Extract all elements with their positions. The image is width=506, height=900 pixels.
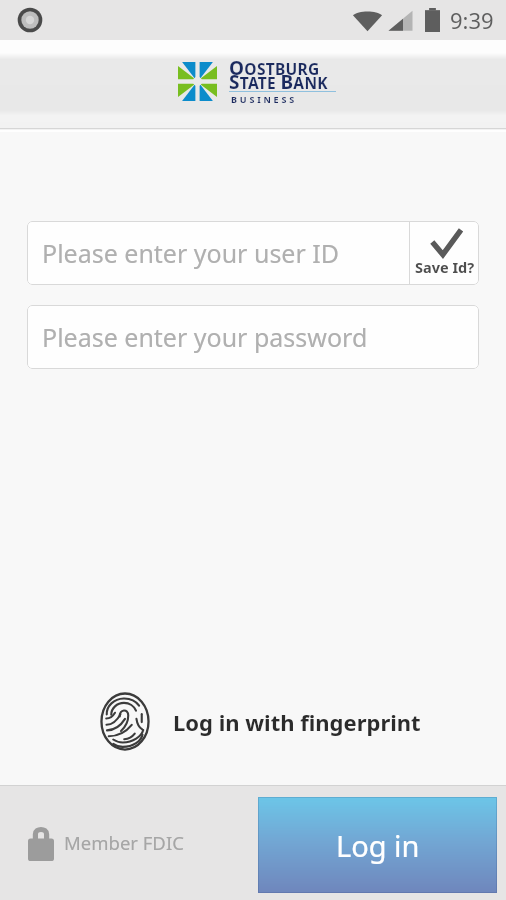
button[interactable]: Please enter your user ID bbox=[27, 221, 409, 285]
staticText: Save Id? bbox=[415, 257, 475, 277]
button[interactable]: Member FDIC bbox=[28, 825, 184, 860]
staticText: BUSINESS bbox=[231, 93, 297, 105]
button[interactable]: Please enter your password bbox=[27, 305, 479, 369]
staticText: 9:39 bbox=[450, 5, 494, 35]
staticText: Log in with fingerprint bbox=[173, 707, 421, 737]
button[interactable]: Save Id bbox=[410, 221, 479, 285]
staticText: OOSTBURG bbox=[229, 55, 320, 81]
staticText: Member FDIC bbox=[64, 830, 184, 855]
staticText: Log in bbox=[336, 826, 420, 865]
button[interactable]: Log in bbox=[258, 797, 497, 893]
staticText: STATE BANK bbox=[229, 69, 328, 95]
staticText: Please enter your password bbox=[42, 320, 368, 354]
button[interactable]: Log in with fingerprint bbox=[7, 692, 506, 751]
staticText: Please enter your user ID bbox=[42, 236, 340, 270]
